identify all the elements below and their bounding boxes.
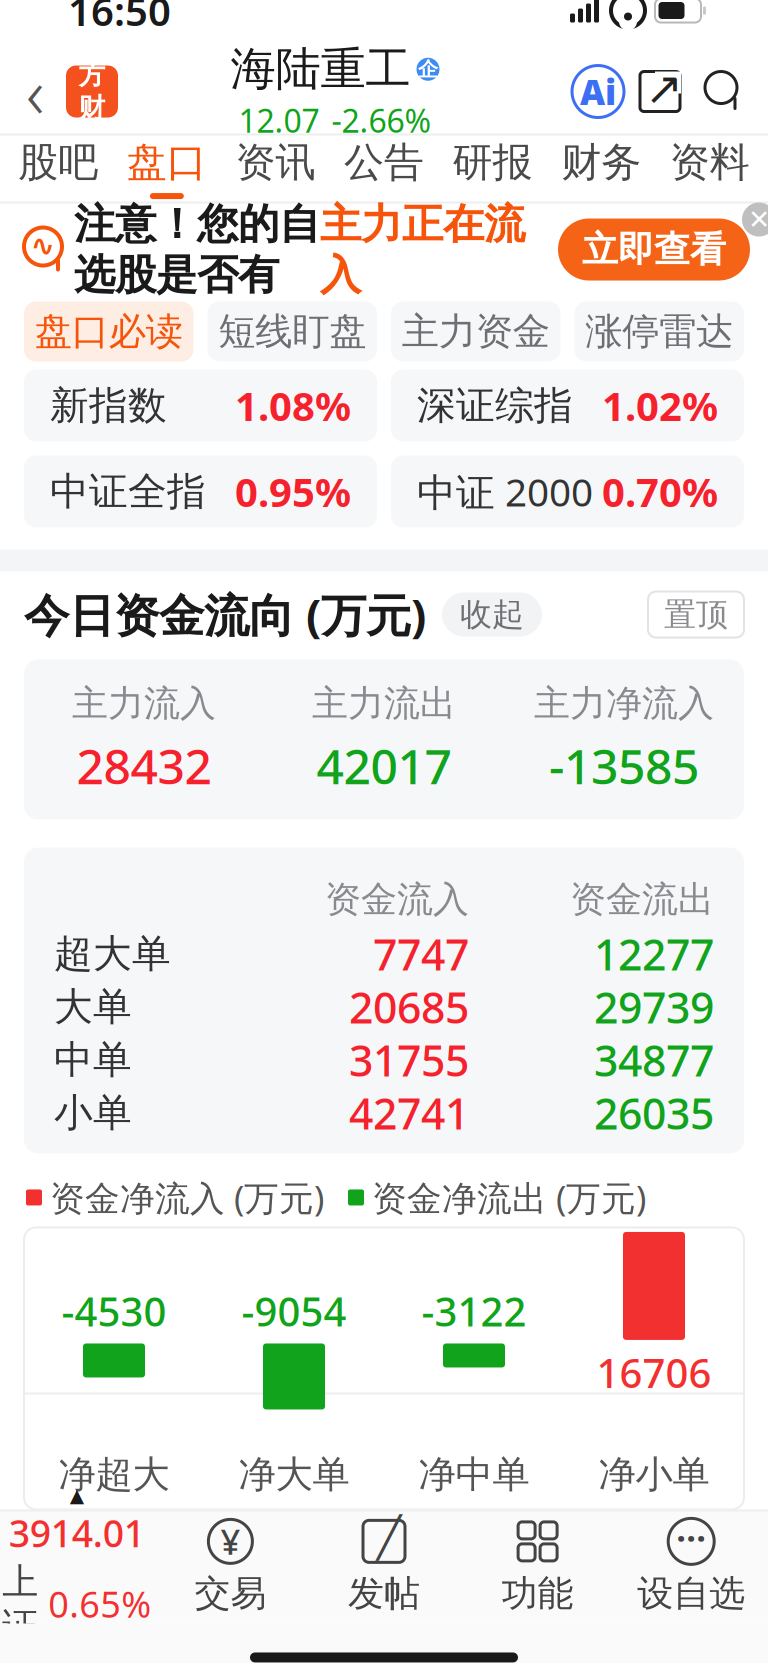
button[interactable]: Close banner bbox=[742, 202, 768, 236]
staticText: 东方 bbox=[78, 26, 105, 91]
button[interactable]: 盘口必读 bbox=[24, 301, 193, 361]
staticText: 小单 bbox=[54, 1089, 132, 1137]
staticText: 1.02% bbox=[602, 379, 718, 432]
button[interactable]: 收起 bbox=[442, 592, 542, 636]
staticText: 0.95% bbox=[235, 465, 351, 518]
staticText: 主力净流入 bbox=[534, 681, 714, 726]
button[interactable]: AI assistant bbox=[572, 65, 624, 117]
staticText: 公告 bbox=[344, 138, 424, 187]
staticText: 研报 bbox=[453, 138, 533, 187]
staticText: 净中单 bbox=[418, 1452, 529, 1497]
staticText: ¥ bbox=[220, 1518, 240, 1564]
staticText: 海陆重工 bbox=[230, 41, 410, 97]
staticText: 28432 bbox=[76, 734, 211, 797]
staticText: 资金流出 bbox=[570, 877, 714, 922]
staticText: ∿ bbox=[30, 229, 55, 262]
button[interactable]: 资讯 bbox=[221, 135, 330, 201]
staticText: 主力正在流入 bbox=[320, 199, 525, 300]
staticText: 主力流入 bbox=[72, 681, 216, 726]
staticText: 设自选 bbox=[637, 1571, 745, 1616]
button[interactable]: 短线盯盘 bbox=[207, 301, 377, 361]
button[interactable]: 功能 bbox=[461, 1512, 614, 1620]
staticText: 涨停雷达 bbox=[585, 309, 733, 354]
staticText: 短线盯盘 bbox=[218, 309, 366, 354]
staticText: 主力流出 bbox=[312, 681, 456, 726]
staticText: 资料 bbox=[670, 138, 750, 187]
button[interactable]: ▲ bbox=[0, 1512, 154, 1620]
staticText: 12277 bbox=[594, 926, 714, 982]
staticText: 财务 bbox=[561, 138, 641, 187]
button[interactable]: 资料 bbox=[655, 135, 764, 201]
staticText: Ai bbox=[580, 68, 616, 114]
staticText: 16:50 bbox=[68, 0, 171, 37]
staticText: -13585 bbox=[549, 734, 699, 797]
staticText: 交易 bbox=[194, 1571, 266, 1616]
button[interactable]: 公告 bbox=[330, 135, 438, 201]
staticText: 42741 bbox=[349, 1085, 469, 1141]
staticText: 12.07 bbox=[238, 99, 319, 142]
staticText: ‹ bbox=[26, 45, 44, 138]
staticText: 资金净流入 (万元) bbox=[50, 1174, 324, 1220]
staticText: 深证综指 bbox=[417, 382, 573, 429]
button[interactable]: ··· bbox=[614, 1512, 768, 1620]
button[interactable]: 盘口 bbox=[113, 135, 221, 201]
staticText: 中证 2000 bbox=[417, 466, 593, 517]
button[interactable]: 置顶 bbox=[648, 591, 744, 637]
staticText: 置顶 bbox=[664, 595, 728, 634]
staticText: 大单 bbox=[54, 983, 132, 1031]
staticText: 16706 bbox=[596, 1346, 711, 1399]
staticText: 资金流入 bbox=[325, 877, 469, 922]
staticText: ↗ bbox=[645, 63, 683, 114]
button[interactable]: Search bbox=[698, 65, 750, 117]
staticText: ▲ bbox=[70, 1485, 84, 1506]
staticText: 中单 bbox=[54, 1036, 132, 1084]
button[interactable]: 东方财富 bbox=[66, 65, 118, 117]
button[interactable]: 股吧 bbox=[4, 135, 113, 201]
button[interactable]: 涨停雷达 bbox=[574, 301, 744, 361]
staticText: 资讯 bbox=[235, 138, 315, 187]
staticText: 立即查看 bbox=[582, 227, 726, 272]
staticText: 超大单 bbox=[54, 930, 171, 978]
staticText: 0.70% bbox=[602, 465, 718, 518]
staticText: 企 bbox=[418, 57, 438, 82]
staticText: 3914.01 bbox=[9, 1508, 145, 1558]
staticText: 31755 bbox=[349, 1032, 469, 1088]
staticText: 盘口必读 bbox=[35, 309, 183, 354]
button[interactable]: Share bbox=[632, 63, 688, 119]
staticText: 股吧 bbox=[18, 138, 98, 187]
staticText: 功能 bbox=[502, 1571, 574, 1616]
staticText: -4530 bbox=[61, 1284, 166, 1337]
staticText: -9054 bbox=[241, 1284, 346, 1337]
staticText: 新指数 bbox=[50, 382, 167, 429]
staticText: 财富 bbox=[78, 91, 105, 157]
staticText: 净超大 bbox=[58, 1452, 169, 1497]
button[interactable]: 财务 bbox=[547, 135, 655, 201]
staticText: 1.08% bbox=[235, 379, 351, 432]
button[interactable]: ¥ bbox=[154, 1512, 307, 1620]
staticText: ╱ bbox=[377, 1515, 401, 1560]
staticText: 0.65% bbox=[48, 1580, 151, 1628]
staticText: 中证全指 bbox=[50, 468, 206, 515]
staticText: ··· bbox=[676, 1514, 706, 1560]
button[interactable]: 研报 bbox=[438, 135, 547, 201]
staticText: 7747 bbox=[373, 926, 469, 982]
staticText: 29739 bbox=[594, 979, 714, 1035]
staticText: 今日资金流向 (万元) bbox=[24, 584, 426, 645]
staticText: 42017 bbox=[316, 734, 451, 797]
button[interactable]: ╱ bbox=[307, 1512, 461, 1620]
staticText: 注意！您的自选股是否有 bbox=[74, 199, 320, 300]
staticText: 20685 bbox=[349, 979, 469, 1035]
staticText: 净小单 bbox=[598, 1452, 709, 1497]
staticText: 净大单 bbox=[238, 1452, 349, 1497]
button[interactable]: ∿ bbox=[0, 204, 768, 294]
staticText: 收起 bbox=[460, 595, 524, 634]
staticText: ✕ bbox=[748, 204, 768, 235]
staticText: 26035 bbox=[594, 1085, 714, 1141]
button[interactable]: Back bbox=[14, 63, 56, 119]
button[interactable]: 主力资金 bbox=[391, 301, 560, 361]
staticText: 34877 bbox=[594, 1032, 714, 1088]
staticText: 上证 bbox=[2, 1560, 38, 1648]
staticText: 发帖 bbox=[348, 1571, 420, 1616]
staticText: 主力资金 bbox=[402, 309, 550, 354]
staticText: -2.66% bbox=[331, 99, 431, 142]
